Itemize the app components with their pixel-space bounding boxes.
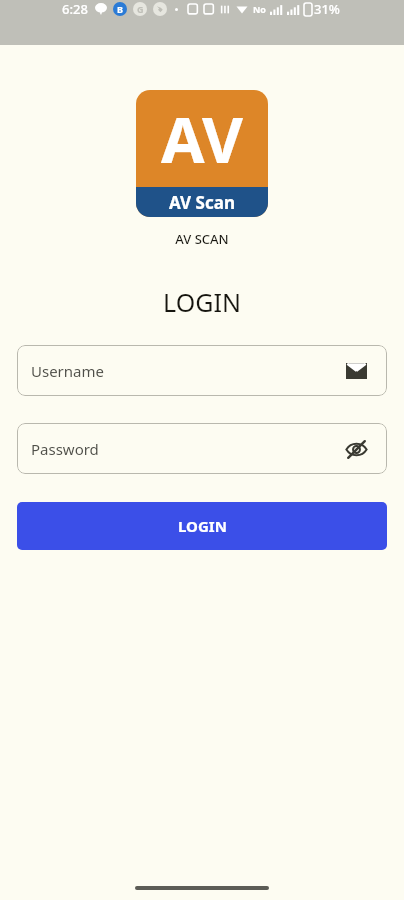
button[interactable]: Email — [343, 358, 369, 384]
staticText: 31% — [314, 0, 340, 18]
button[interactable]: LOGIN — [17, 502, 387, 550]
staticText: 6:28 — [62, 0, 88, 18]
staticText: AV Scan — [169, 191, 235, 214]
staticText: G — [137, 3, 144, 15]
staticText: LOGIN — [0, 285, 404, 319]
staticText: Username — [31, 361, 343, 381]
staticText: Password — [31, 439, 343, 459]
button[interactable]: Password — [17, 423, 387, 474]
staticText: LOGIN — [178, 516, 227, 536]
staticText: B — [117, 3, 123, 15]
button[interactable]: Show password — [343, 436, 369, 462]
staticText: AV SCAN — [0, 230, 404, 248]
button[interactable]: Username — [17, 345, 387, 396]
staticText: No — [253, 3, 266, 15]
staticText: AV — [161, 96, 244, 182]
